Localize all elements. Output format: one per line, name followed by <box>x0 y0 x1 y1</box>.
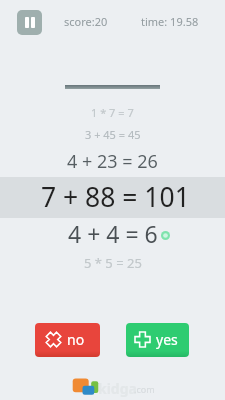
staticText: no <box>67 330 85 349</box>
staticText: 4 + 23 = 26 <box>67 149 158 174</box>
staticText: 1 * 7 = 7 <box>91 105 134 120</box>
staticText: 3 + 45 = 45 <box>85 127 141 142</box>
staticText: .com <box>134 383 155 395</box>
button[interactable]: no <box>35 323 100 357</box>
staticText: 7 + 88 = 101 <box>41 179 190 215</box>
staticText: 4 + 4 = 6 <box>68 218 158 249</box>
staticText: kidga <box>98 379 137 398</box>
staticText: time: 19.58 <box>141 14 199 29</box>
staticText: score:20 <box>64 14 108 29</box>
staticText: yes <box>156 330 178 349</box>
staticText: 5 * 5 = 25 <box>84 254 142 272</box>
button[interactable]: Pause <box>17 10 42 35</box>
button[interactable]: yes <box>126 323 189 357</box>
